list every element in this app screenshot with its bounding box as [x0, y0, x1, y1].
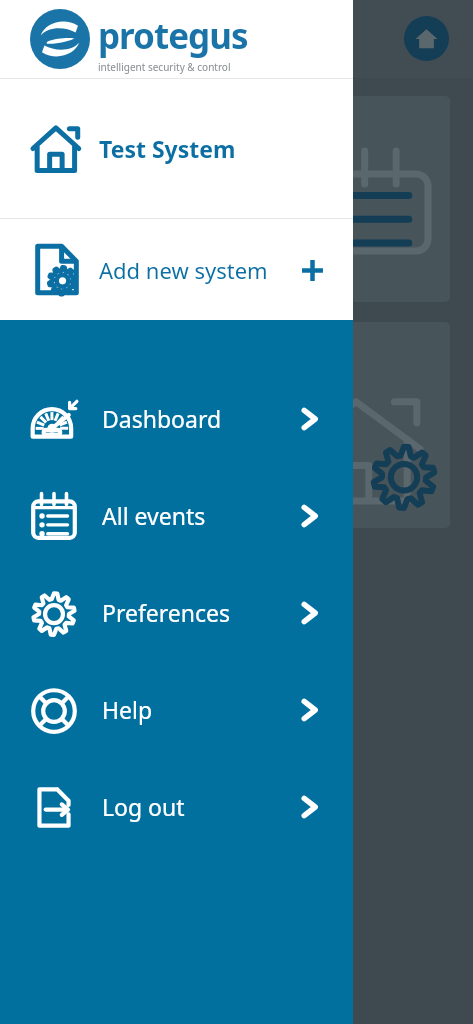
button[interactable]: [12, 96, 450, 302]
staticText: Log out: [102, 791, 297, 822]
button[interactable]: Dashboard: [0, 370, 353, 467]
button[interactable]: Test System: [0, 79, 353, 218]
button[interactable]: Add: [297, 255, 327, 285]
staticText: Test System: [99, 133, 236, 164]
staticText: Add new system: [99, 255, 297, 285]
button[interactable]: Preferences: [0, 564, 353, 661]
button[interactable]: Home: [404, 16, 449, 61]
button[interactable]: All events: [0, 467, 353, 564]
button[interactable]: Help: [0, 661, 353, 758]
staticText: protegus: [98, 12, 248, 60]
staticText: Dashboard: [102, 403, 297, 434]
button[interactable]: Add new system: [0, 219, 353, 320]
staticText: intelligent security & control: [98, 60, 231, 74]
staticText: Preferences: [102, 597, 297, 628]
staticText: All events: [102, 500, 297, 531]
staticText: Help: [102, 694, 297, 725]
button[interactable]: [12, 322, 450, 528]
button[interactable]: Log out: [0, 758, 353, 855]
